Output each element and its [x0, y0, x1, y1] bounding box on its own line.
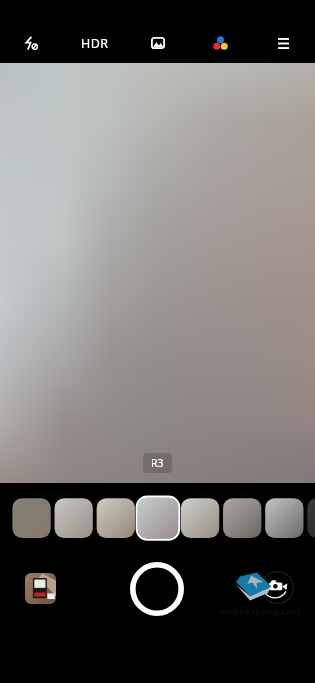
button[interactable]: Menu: [252, 23, 315, 63]
button[interactable]: R3: [143, 453, 172, 473]
button[interactable]: Last photo: [25, 573, 56, 604]
button[interactable]: Flash off: [0, 23, 63, 63]
button[interactable]: Color filters: [189, 23, 252, 63]
button[interactable]: Switch camera: [261, 571, 294, 604]
staticText: HDR: [81, 35, 109, 52]
button[interactable]: Gallery: [126, 23, 189, 63]
button[interactable]: Shutter: [130, 562, 184, 616]
staticText: R3: [151, 456, 164, 470]
staticText: mobile-review.com: [220, 605, 300, 617]
button[interactable]: HDR: [63, 23, 126, 63]
